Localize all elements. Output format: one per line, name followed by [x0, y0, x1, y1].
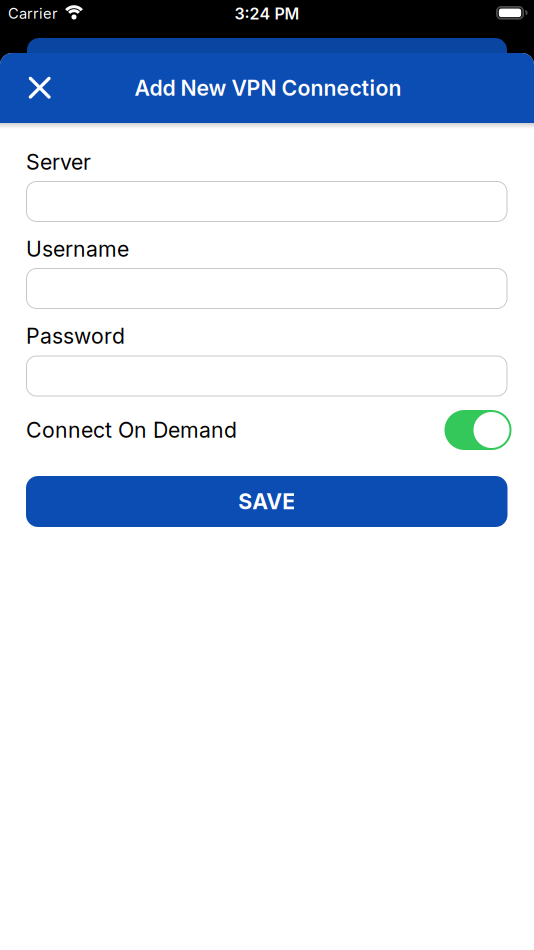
button[interactable]: Username	[26, 268, 507, 309]
button[interactable]: Connect On Demand	[444, 410, 511, 450]
staticText: SAVE	[238, 489, 295, 514]
staticText: Carrier	[8, 5, 58, 22]
staticText: 3:24 PM	[234, 4, 299, 23]
button[interactable]: Close	[18, 66, 62, 110]
staticText: Add New VPN Connection	[134, 75, 401, 101]
staticText: Username	[26, 236, 129, 262]
button[interactable]: Password	[26, 355, 507, 396]
button[interactable]: Server	[26, 181, 507, 222]
staticText: Server	[26, 149, 91, 175]
button[interactable]: SAVE	[26, 476, 507, 527]
staticText: Connect On Demand	[26, 417, 237, 443]
staticText: Password	[26, 323, 125, 349]
